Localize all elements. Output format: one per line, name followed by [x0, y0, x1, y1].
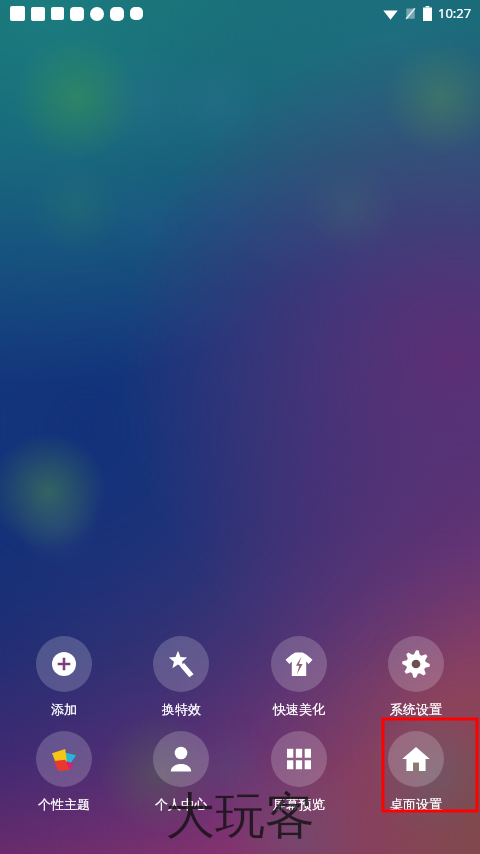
button[interactable]: System settings: [362, 634, 470, 719]
button[interactable]: Personal center: [127, 729, 235, 814]
button[interactable]: Home settings highlighted: [383, 719, 477, 811]
staticText: 大玩客: [165, 785, 315, 848]
button[interactable]: Home settings: [362, 729, 470, 814]
button[interactable]: Quick beautify: [245, 634, 353, 719]
staticText: 个人中心: [155, 796, 207, 812]
staticText: 10:27: [438, 4, 472, 22]
staticText: 快速美化: [273, 701, 325, 717]
staticText: 屏幕预览: [273, 796, 325, 812]
staticText: 系统设置: [390, 701, 442, 717]
staticText: 桌面设置: [390, 796, 442, 812]
button[interactable]: Change effects: [127, 634, 235, 719]
staticText: 换特效: [162, 701, 201, 717]
staticText: 个性主题: [38, 796, 90, 812]
button[interactable]: Add: [10, 634, 118, 719]
staticText: 添加: [51, 701, 77, 717]
button[interactable]: Themes: [10, 729, 118, 814]
button[interactable]: Screen preview: [245, 729, 353, 814]
